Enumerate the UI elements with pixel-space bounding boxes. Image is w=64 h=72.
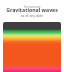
staticText: Gravitational waves xyxy=(0,6,64,13)
staticText: Tomorrow xyxy=(0,4,64,9)
button[interactable] xyxy=(3,22,61,72)
staticText: as of any date xyxy=(0,13,64,18)
